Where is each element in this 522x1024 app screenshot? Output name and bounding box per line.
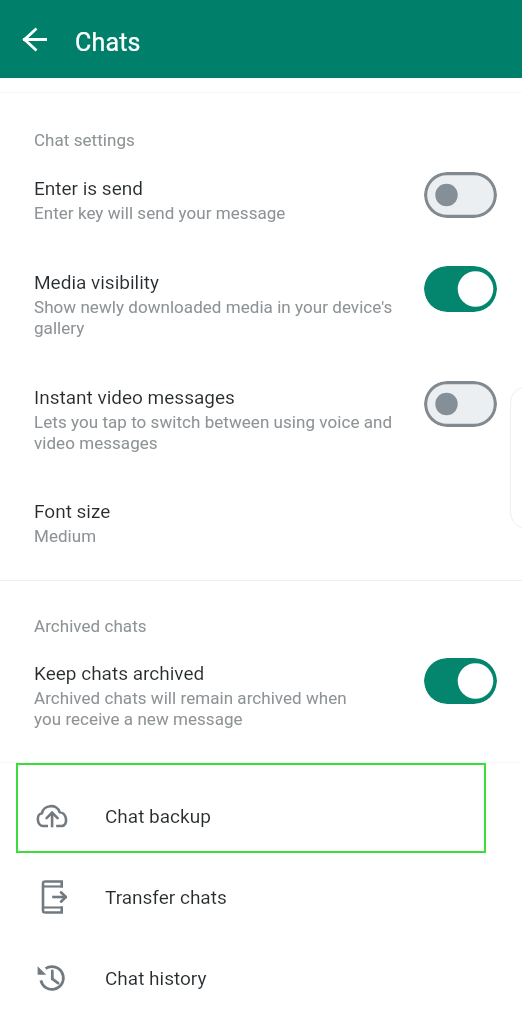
button[interactable]: Instant video messages, off [424, 381, 497, 427]
staticText: Font size [34, 500, 111, 522]
button[interactable]: Enter is send [0, 173, 522, 233]
staticText: Chats [75, 28, 141, 57]
staticText: Enter is send [34, 177, 143, 199]
button[interactable]: Instant video messages [0, 382, 522, 464]
staticText: Keep chats archived [34, 662, 205, 684]
staticText: Lets you tap to switch between using voi… [34, 412, 393, 454]
staticText: Medium [34, 526, 97, 546]
button[interactable]: Media visibility [0, 267, 522, 349]
button[interactable]: Keep chats archived [0, 658, 522, 740]
staticText: Instant video messages [34, 386, 235, 408]
button[interactable]: Font size [0, 496, 522, 556]
button[interactable]: Back [7, 11, 63, 67]
staticText: Media visibility [34, 271, 160, 293]
staticText: Enter key will send your message [34, 203, 286, 223]
button[interactable]: Media visibility, on [424, 266, 497, 312]
staticText: Archived chats will remain archived when… [34, 688, 347, 730]
staticText: Chat backup [105, 805, 211, 827]
button[interactable]: Chat history [0, 933, 522, 1023]
staticText: Transfer chats [105, 886, 227, 908]
button[interactable]: Keep chats archived, on [424, 658, 497, 704]
staticText: Show newly downloaded media in your devi… [34, 297, 393, 339]
button[interactable]: Chat backup [0, 771, 522, 861]
staticText: Chat history [105, 967, 207, 989]
button[interactable]: Transfer chats [0, 852, 522, 942]
staticText: Archived chats [34, 616, 147, 636]
button[interactable]: Enter is send, off [424, 172, 497, 218]
staticText: Chat settings [34, 130, 135, 150]
